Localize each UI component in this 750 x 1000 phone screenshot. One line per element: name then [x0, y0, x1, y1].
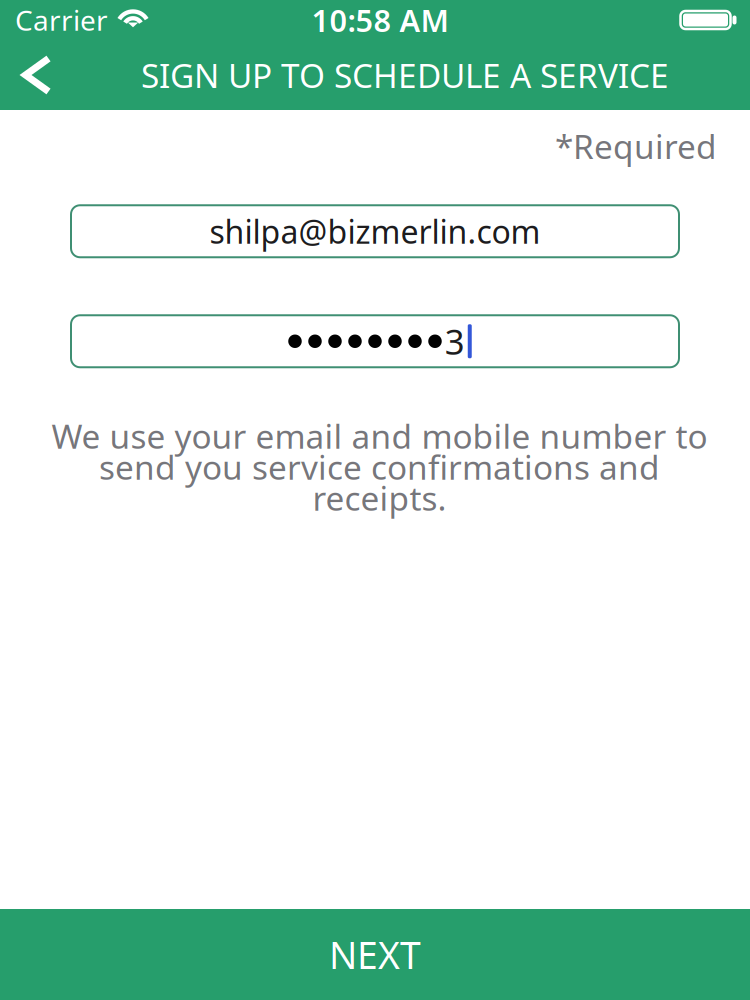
staticText: 10:58 AM — [311, 0, 448, 40]
staticText: SIGN UP TO SCHEDULE A SERVICE — [141, 53, 669, 97]
staticText: NEXT — [329, 930, 421, 979]
staticText: shilpa@bizmerlin.com — [209, 210, 540, 252]
staticText: 3 — [445, 318, 465, 364]
button[interactable]: shilpa@bizmerlin.com — [0, 205, 750, 257]
staticText: We use your email and mobile number to — [51, 414, 707, 458]
button[interactable]: Back — [0, 41, 67, 109]
button[interactable]: 3 — [0, 315, 750, 367]
staticText: Carrier — [15, 1, 108, 39]
staticText: *Required — [555, 124, 717, 168]
button[interactable]: NEXT — [0, 909, 750, 1000]
staticText: receipts. — [312, 476, 446, 520]
staticText: send you service confirmations and — [99, 445, 660, 489]
